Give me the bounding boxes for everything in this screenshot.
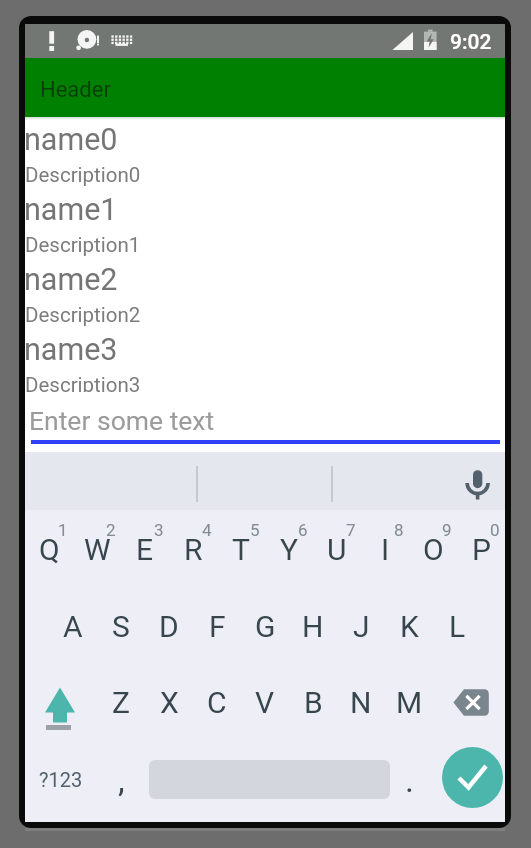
button[interactable]: name1 (25, 187, 505, 257)
button[interactable]: V (241, 664, 289, 741)
button[interactable]: S (97, 587, 145, 665)
staticText: 3 (154, 520, 164, 538)
button[interactable]: H (289, 587, 337, 665)
button[interactable]: name0 (25, 120, 505, 187)
button[interactable]: F (193, 587, 241, 665)
staticText: L (449, 609, 466, 644)
button[interactable]: . (385, 741, 433, 818)
button[interactable]: Header (25, 58, 505, 117)
staticText: M (396, 685, 423, 720)
button[interactable]: , (97, 741, 145, 818)
staticText: S (112, 609, 130, 644)
staticText: 4 (202, 520, 212, 538)
staticText: Description3 (25, 373, 141, 392)
button[interactable]: B (289, 664, 337, 741)
staticText: F (209, 609, 226, 644)
button[interactable]: Enter some text (25, 392, 505, 452)
button[interactable]: Y (265, 510, 313, 588)
staticText: W (84, 532, 111, 567)
button[interactable]: I (361, 510, 409, 588)
button[interactable]: name2 (25, 257, 505, 327)
button[interactable]: P (457, 510, 505, 588)
button[interactable]: name3 (25, 327, 505, 392)
button[interactable]: O (409, 510, 457, 588)
staticText: Description1 (25, 233, 141, 257)
staticText: U (327, 532, 347, 567)
staticText: 2 (106, 520, 116, 538)
button[interactable]: K (385, 587, 433, 665)
button[interactable]: A (49, 587, 97, 665)
staticText: 5 (250, 520, 260, 538)
staticText: 7 (346, 520, 356, 538)
button[interactable]: X (145, 664, 193, 741)
staticText: , (118, 760, 125, 800)
staticText: name0 (25, 122, 118, 158)
staticText: ?123 (39, 768, 83, 791)
staticText: 6 (298, 520, 308, 538)
staticText: Header (40, 77, 111, 103)
button[interactable]: ?123 (25, 741, 97, 818)
staticText: Description2 (25, 303, 141, 327)
staticText: name3 (25, 332, 118, 368)
staticText: T (232, 532, 250, 567)
button[interactable]: Q (25, 510, 73, 588)
staticText: D (159, 609, 179, 644)
staticText: . (405, 760, 414, 800)
staticText: K (400, 609, 419, 644)
button[interactable] (442, 747, 503, 808)
staticText: 8 (394, 520, 404, 538)
button[interactable]: D (145, 587, 193, 665)
staticText: B (304, 685, 323, 720)
button[interactable]: G (241, 587, 289, 665)
button[interactable]: L (433, 587, 481, 665)
staticText: Y (280, 532, 299, 567)
staticText: Description0 (25, 163, 141, 187)
staticText: N (350, 685, 372, 720)
button[interactable]: C (193, 664, 241, 741)
staticText: X (160, 685, 179, 720)
staticText: E (136, 532, 154, 567)
staticText: P (472, 532, 491, 567)
staticText: 0 (490, 520, 500, 538)
staticText: I (381, 532, 390, 567)
staticText: 9 (442, 520, 452, 538)
button[interactable] (433, 664, 505, 741)
button[interactable]: J (337, 587, 385, 665)
staticText: name1 (25, 192, 118, 228)
staticText: Q (39, 532, 60, 567)
staticText: R (184, 532, 203, 567)
staticText: H (302, 609, 324, 644)
staticText: A (63, 609, 83, 644)
button[interactable] (25, 664, 97, 741)
staticText: O (423, 532, 444, 567)
button[interactable]: R (169, 510, 217, 588)
button[interactable]: E (121, 510, 169, 588)
staticText: J (353, 609, 370, 644)
staticText: 9:02 (450, 30, 492, 55)
button[interactable]: N (337, 664, 385, 741)
button[interactable]: M (385, 664, 433, 741)
button[interactable]: T (217, 510, 265, 588)
staticText: V (255, 685, 275, 720)
staticText: 1 (58, 520, 68, 538)
button[interactable]: Z (97, 664, 145, 741)
staticText: name2 (25, 262, 118, 298)
button[interactable]: U (313, 510, 361, 588)
staticText: Z (112, 685, 130, 720)
staticText: G (255, 609, 276, 644)
staticText: Enter some text (29, 405, 215, 436)
staticText: C (207, 685, 227, 720)
button[interactable]: W (73, 510, 121, 588)
